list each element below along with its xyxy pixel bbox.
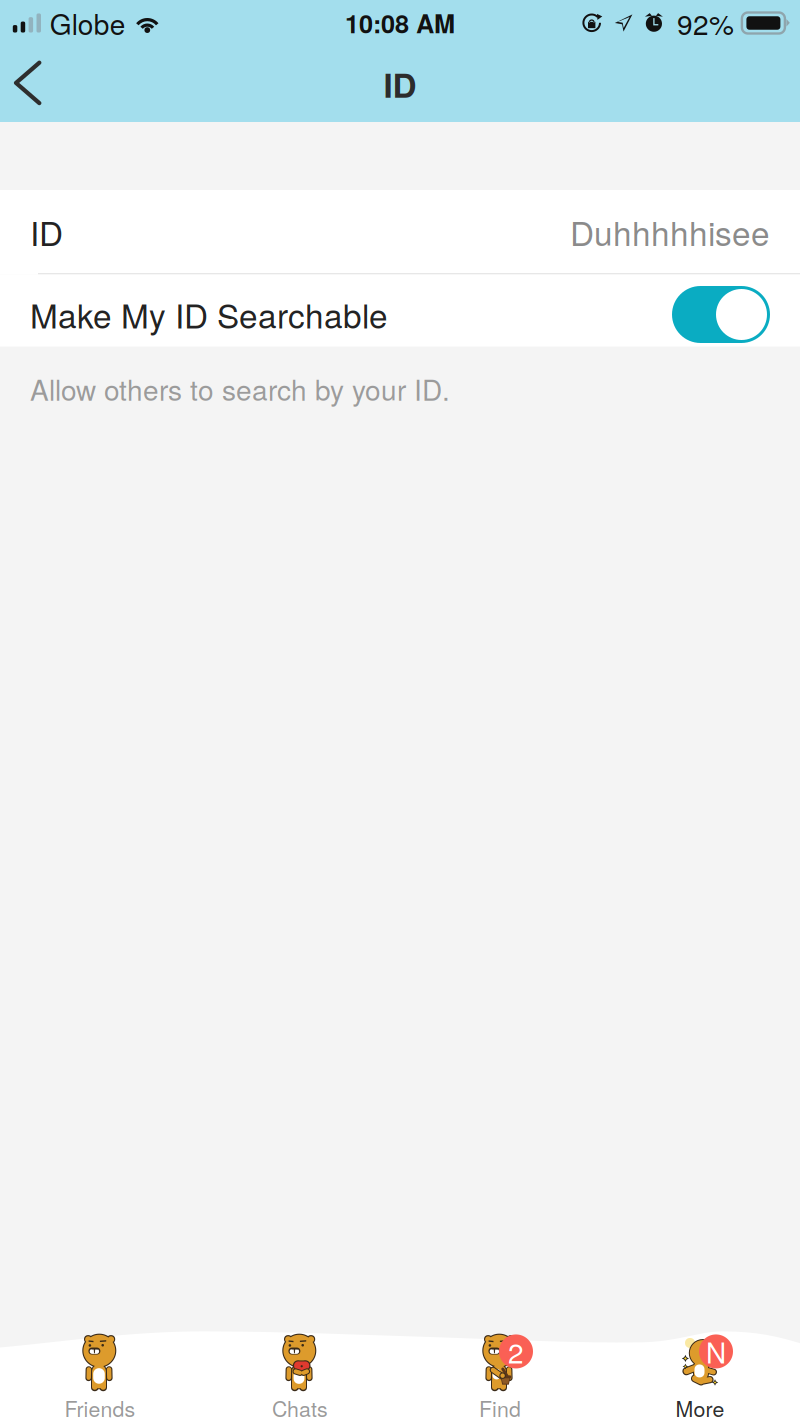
staticText: Duhhhhhisee <box>570 208 770 255</box>
button[interactable]: Make My ID Searchable <box>672 278 770 343</box>
button[interactable]: N <box>600 1321 800 1422</box>
button[interactable]: 2 <box>400 1321 600 1422</box>
staticText: Friends <box>64 1392 135 1422</box>
staticText: 10:08 AM <box>345 5 455 41</box>
button[interactable]: Back <box>0 46 59 122</box>
button[interactable]: ID <box>0 190 800 273</box>
staticText: ID <box>383 60 416 108</box>
staticText: 2 <box>508 1331 524 1371</box>
button[interactable]: Chats <box>200 1321 400 1422</box>
staticText: Chats <box>272 1392 328 1422</box>
staticText: More <box>675 1392 724 1422</box>
staticText: Globe <box>50 3 126 43</box>
staticText: Make My ID Searchable <box>30 290 388 338</box>
staticText: Find <box>479 1392 521 1422</box>
button[interactable]: Friends <box>0 1321 200 1422</box>
staticText: ID <box>30 208 63 255</box>
staticText: 92% <box>677 3 734 43</box>
staticText: N <box>706 1331 726 1371</box>
staticText: Allow others to search by your ID. <box>30 368 450 409</box>
